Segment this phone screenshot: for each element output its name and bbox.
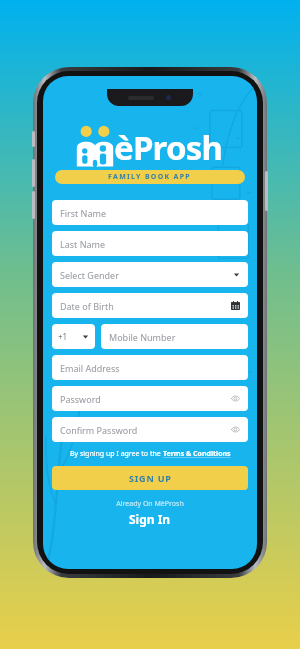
button[interactable]: Date of Birth	[52, 293, 248, 318]
button[interactable]: Mobile Number	[101, 324, 248, 349]
button[interactable]: Last Name	[52, 231, 248, 256]
staticText: Email Address	[60, 362, 120, 374]
other: Show password	[231, 394, 240, 403]
button[interactable]: Terms & Conditions	[163, 449, 231, 459]
staticText: Date of Birth	[60, 300, 114, 312]
button[interactable]: Password	[52, 386, 248, 411]
staticText: Last Name	[60, 238, 106, 250]
staticText: Mobile Number	[109, 331, 176, 343]
staticText: èProsh	[114, 125, 223, 170]
button[interactable]: Select Gender	[52, 262, 248, 287]
button[interactable]: +1	[52, 324, 95, 349]
staticText: SIGN UP	[129, 472, 172, 484]
button[interactable]: Confirm Password	[52, 417, 248, 442]
other: Show password	[231, 425, 240, 434]
staticText: +1	[58, 331, 68, 342]
staticText: Terms & Conditions	[163, 449, 231, 459]
staticText: FAMILY BOOK APP	[108, 172, 192, 182]
other: Pick date	[231, 301, 240, 310]
staticText: Confirm Password	[60, 424, 138, 436]
staticText: Sign In	[129, 511, 171, 527]
staticText: By signing up I agree to the	[70, 449, 163, 459]
staticText: Already On MèProsh	[52, 499, 248, 509]
button[interactable]: Email Address	[52, 355, 248, 380]
staticText: Password	[60, 393, 101, 405]
button[interactable]: First Name	[52, 200, 248, 225]
staticText: First Name	[60, 207, 106, 219]
button[interactable]: SIGN UP	[52, 466, 248, 490]
button[interactable]: Sign In	[52, 511, 248, 527]
staticText: Select Gender	[60, 269, 119, 281]
